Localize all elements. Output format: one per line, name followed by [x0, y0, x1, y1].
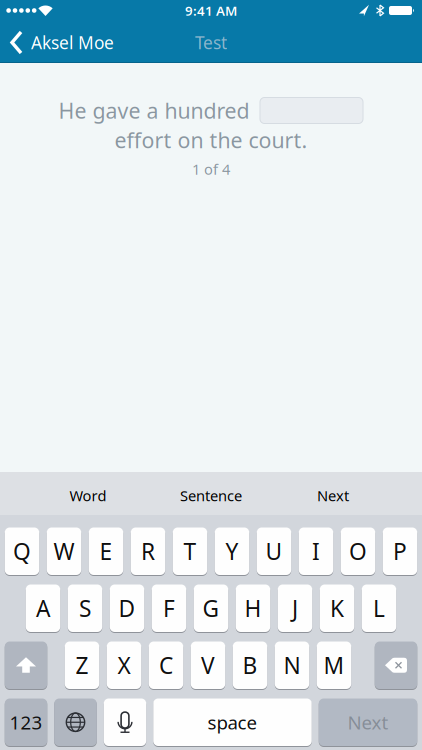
button[interactable]: E	[89, 527, 123, 575]
button[interactable]: O	[341, 527, 375, 575]
staticText: Test	[195, 31, 227, 54]
staticText: 9:41 AM	[185, 2, 237, 19]
button[interactable]: C	[149, 641, 183, 689]
button[interactable]: Aksel Moe	[0, 31, 114, 54]
staticText: S	[79, 593, 91, 623]
button[interactable]: D	[110, 584, 144, 632]
button[interactable]: V	[191, 641, 225, 689]
button[interactable]: P	[383, 527, 417, 575]
staticText: Word	[69, 486, 106, 505]
button[interactable]: Next	[317, 486, 349, 505]
staticText: U	[265, 536, 282, 566]
staticText: M	[323, 650, 344, 680]
button[interactable]: 123	[5, 698, 47, 746]
button[interactable]: Next	[319, 698, 417, 746]
button[interactable]: K	[320, 584, 354, 632]
staticText: W	[53, 536, 74, 566]
button[interactable]: Word	[69, 486, 106, 505]
button[interactable]	[375, 641, 417, 689]
button[interactable]: M	[317, 641, 351, 689]
staticText: F	[163, 593, 175, 623]
staticText: 1 of 4	[192, 159, 230, 179]
button[interactable]: space	[153, 698, 312, 746]
button[interactable]: U	[257, 527, 291, 575]
button[interactable]: N	[275, 641, 309, 689]
staticText: Next	[347, 710, 388, 735]
button[interactable]	[259, 97, 363, 124]
button[interactable]: L	[362, 584, 396, 632]
staticText: E	[99, 536, 112, 566]
staticText: D	[118, 593, 135, 623]
staticText: C	[159, 650, 173, 680]
staticText: Z	[75, 650, 88, 680]
button[interactable]: I	[299, 527, 333, 575]
button[interactable]: F	[152, 584, 186, 632]
button[interactable]: X	[107, 641, 141, 689]
button[interactable]	[104, 698, 146, 746]
staticText: N	[283, 650, 300, 680]
staticText: P	[393, 536, 407, 566]
staticText: I	[312, 536, 320, 566]
button[interactable]: T	[173, 527, 207, 575]
button[interactable]: B	[233, 641, 267, 689]
button[interactable]: Z	[65, 641, 99, 689]
staticText: A	[36, 593, 50, 623]
button[interactable]	[54, 698, 97, 746]
button[interactable]	[5, 641, 47, 689]
button[interactable]: J	[278, 584, 312, 632]
staticText: G	[202, 593, 219, 623]
staticText: Y	[225, 536, 238, 566]
staticText: H	[244, 593, 261, 623]
staticText: R	[141, 536, 155, 566]
button[interactable]: S	[68, 584, 102, 632]
staticText: Q	[13, 536, 31, 566]
staticText: V	[201, 650, 215, 680]
staticText: X	[117, 650, 130, 680]
staticText: Aksel Moe	[31, 31, 114, 54]
staticText: Next	[317, 486, 349, 505]
staticText: L	[373, 593, 385, 623]
staticText: J	[292, 593, 298, 623]
button[interactable]: Q	[5, 527, 39, 575]
button[interactable]: Sentence	[180, 486, 242, 505]
staticText: T	[183, 536, 196, 566]
staticText: K	[330, 593, 344, 623]
button[interactable]: Y	[215, 527, 249, 575]
staticText: space	[207, 710, 257, 735]
staticText: O	[349, 536, 367, 566]
staticText: 123	[9, 710, 42, 735]
button[interactable]: G	[194, 584, 228, 632]
staticText: B	[242, 650, 257, 680]
staticText: Sentence	[180, 486, 242, 505]
button[interactable]: H	[236, 584, 270, 632]
button[interactable]: W	[47, 527, 81, 575]
button[interactable]: A	[26, 584, 60, 632]
staticText: He gave a hundred	[58, 96, 249, 125]
staticText: effort on the court.	[114, 126, 307, 154]
button[interactable]: R	[131, 527, 165, 575]
